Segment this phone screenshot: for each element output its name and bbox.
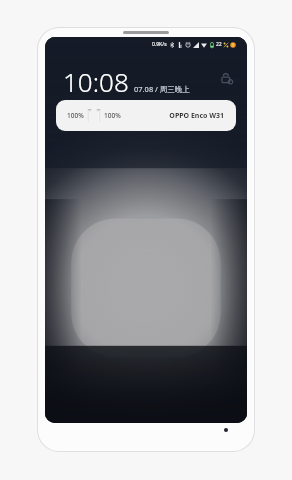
button[interactable]: Lock screen settings (217, 69, 235, 87)
staticText: 07.08 / 周三晚上 (134, 84, 190, 94)
button[interactable]: 100% (56, 100, 236, 131)
staticText: 100% (67, 111, 84, 120)
staticText: 100% (104, 111, 121, 120)
staticText: 22 (216, 41, 222, 48)
staticText: 0.9K/s (152, 41, 167, 48)
staticText: 10:08 (63, 64, 129, 99)
staticText: OPPO Enco W31 (169, 111, 224, 121)
